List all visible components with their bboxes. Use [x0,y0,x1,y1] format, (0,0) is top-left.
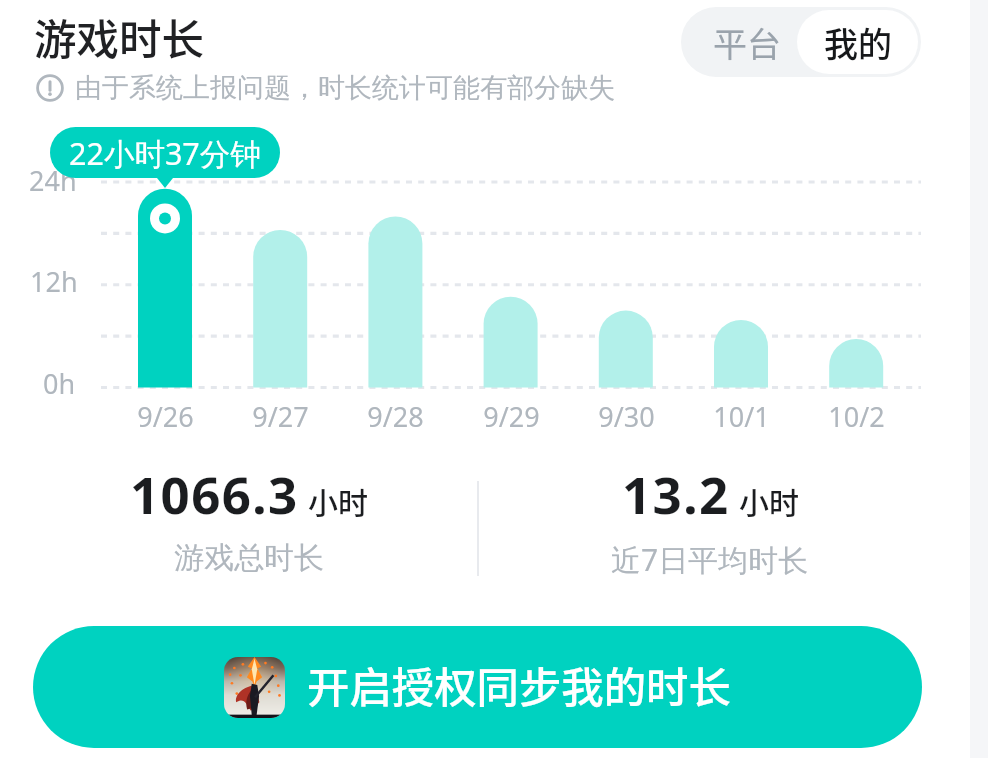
button[interactable]: 开启授权同步我的时长 [33,626,922,748]
button[interactable]: 1066.3 [59,459,439,577]
staticText: 小时 [739,479,799,522]
staticText: 13.2 [622,459,730,528]
staticText: 平台 [713,18,781,67]
staticText: 我的 [824,18,892,67]
staticText: 9/30 [598,398,655,435]
staticText: 游戏总时长 [174,539,324,577]
staticText: 12h [30,263,78,300]
button[interactable]: 我的 [797,10,918,74]
button[interactable]: 13.2 [520,459,900,580]
staticText: 近7日平均时长 [611,539,809,580]
staticText: 开启授权同步我的时长 [307,654,731,715]
staticText: 1066.3 [130,459,299,528]
button[interactable]: 平台 [681,7,797,77]
staticText: 0h [43,365,76,402]
staticText: 9/27 [252,398,309,435]
staticText: 9/29 [483,398,540,435]
staticText: 9/26 [137,398,194,435]
staticText: 22小时37分钟 [69,132,261,174]
staticText: 游戏时长 [34,6,205,68]
staticText: 10/2 [828,398,885,435]
staticText: 24h [29,162,77,199]
staticText: 10/1 [713,398,770,435]
staticText: 由于系统上报问题，时长统计可能有部分缺失 [75,71,615,105]
staticText: 9/28 [367,398,424,435]
staticText: 小时 [308,479,368,522]
